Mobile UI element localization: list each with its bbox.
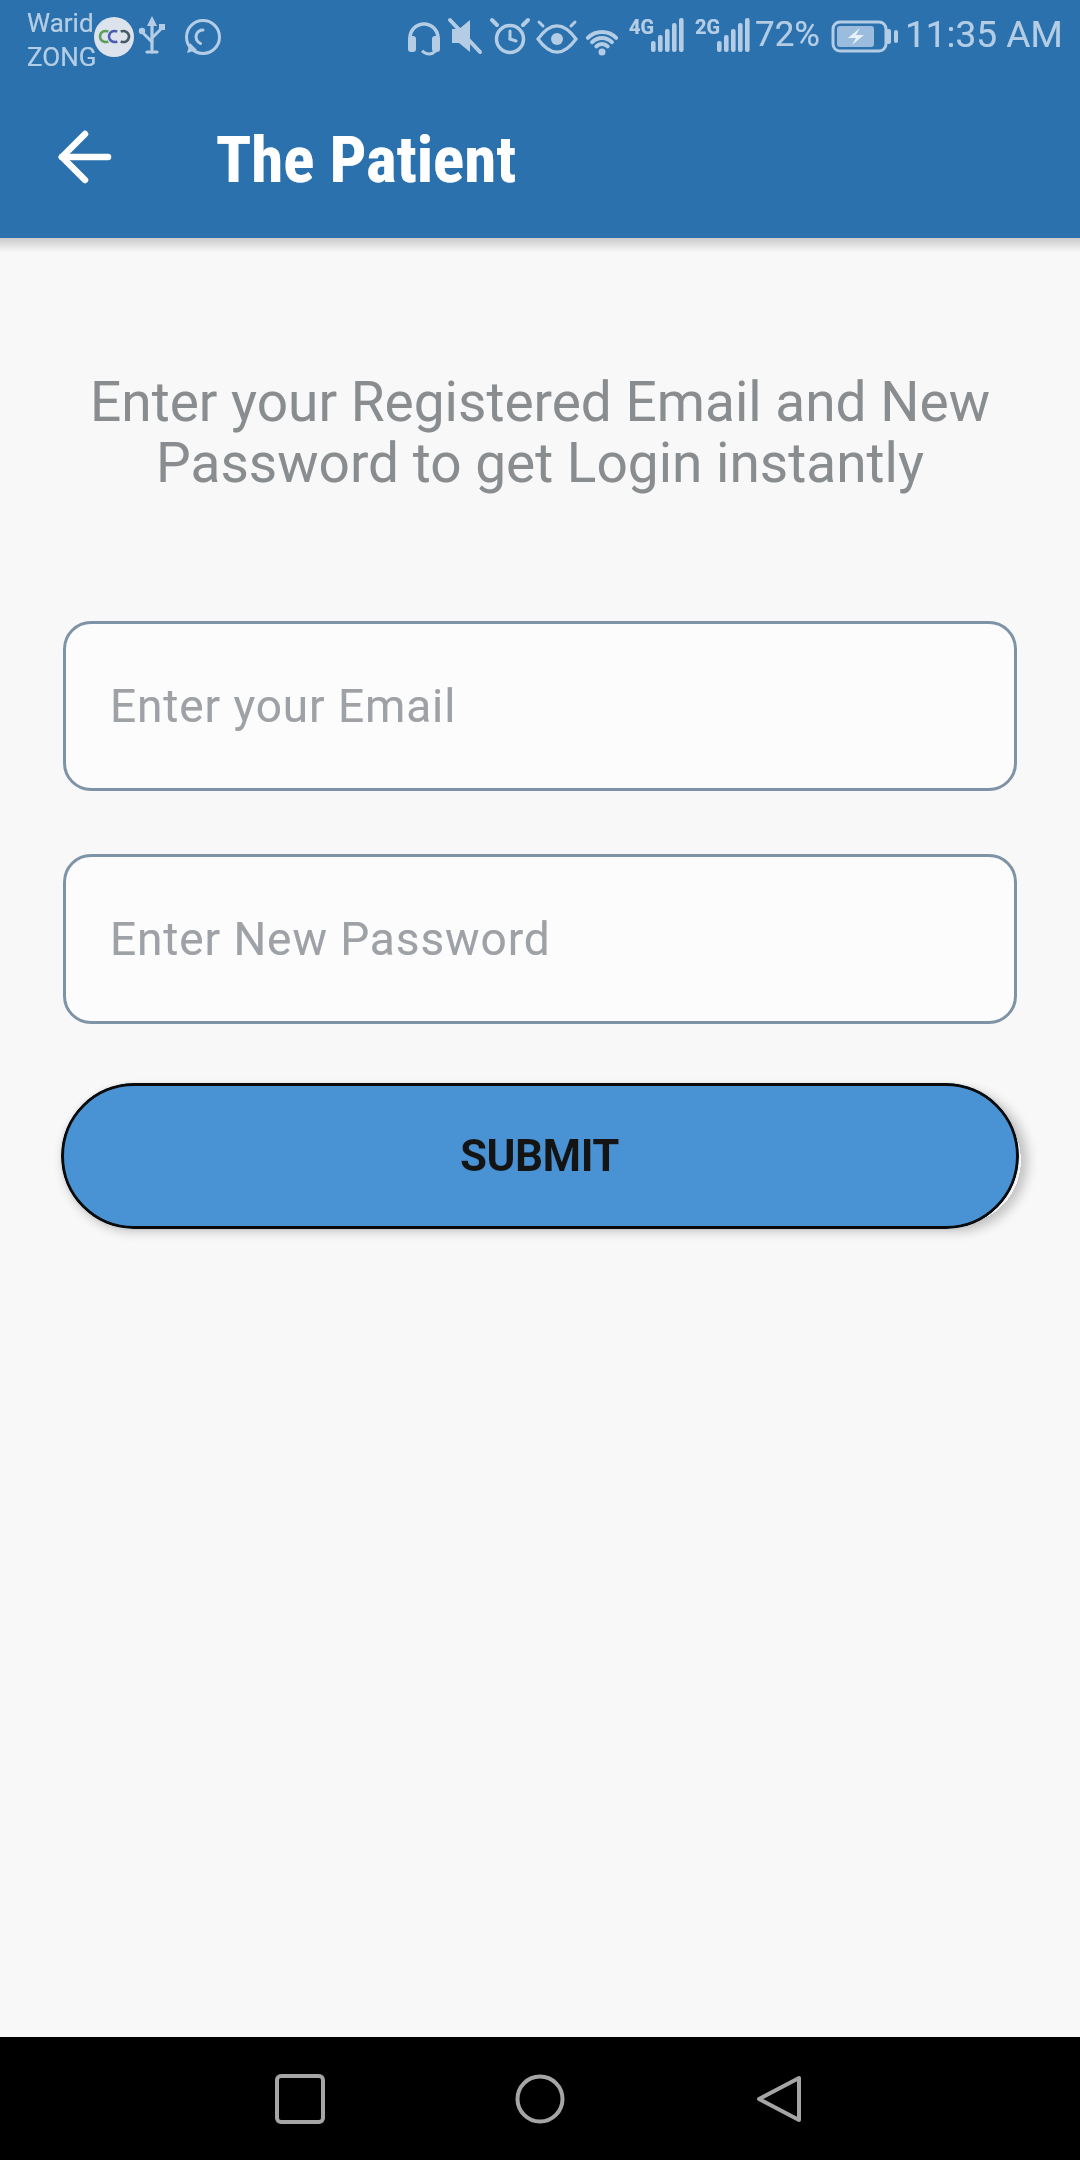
button[interactable]: SUBMIT xyxy=(61,1083,1019,1229)
staticText: 72% xyxy=(755,14,820,55)
button[interactable] xyxy=(690,2037,870,2160)
button[interactable]: Enter your Email xyxy=(63,621,1017,791)
staticText: The Patient xyxy=(216,122,517,198)
staticText: Enter your Registered Email and New Pass… xyxy=(90,370,990,496)
staticText: 4G xyxy=(629,15,655,38)
button[interactable] xyxy=(450,2037,630,2160)
staticText: Enter your Email xyxy=(110,679,457,733)
staticText: 2G xyxy=(695,15,721,38)
staticText: SUBMIT xyxy=(460,1130,620,1182)
staticText: ZONG xyxy=(27,42,97,72)
button[interactable] xyxy=(40,112,130,202)
button[interactable]: Enter New Password xyxy=(63,854,1017,1024)
staticText: 11:35 AM xyxy=(905,13,1063,56)
staticText: Warid xyxy=(27,8,94,38)
button[interactable] xyxy=(210,2037,390,2160)
staticText: Enter New Password xyxy=(110,912,551,966)
